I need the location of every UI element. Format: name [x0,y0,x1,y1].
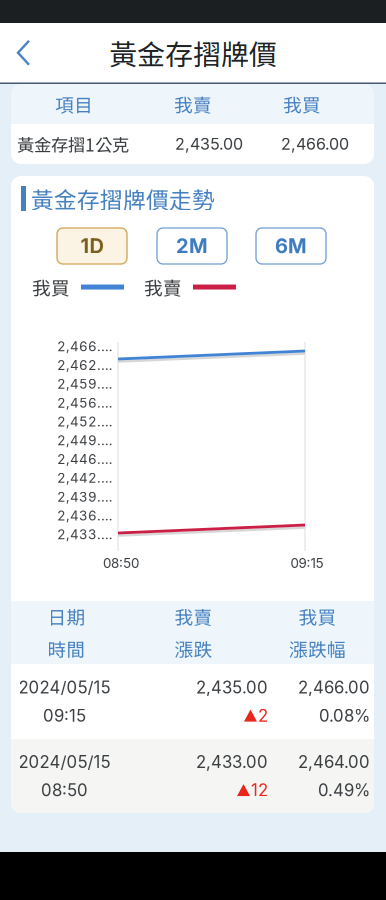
staticText: 2,466.00 [298,677,370,697]
staticText: 2,446.20 [57,451,115,467]
staticText: 2,433.00 [196,752,268,772]
staticText: 2,449.50 [57,432,115,448]
staticText: 2,466.00 [281,134,349,154]
staticText: 2024/05/15 [18,677,110,697]
staticText: 黃金存摺牌價 [109,32,277,73]
staticText: 我買 [283,90,321,117]
staticText: 09:15 [43,705,86,726]
staticText: 1D [80,234,103,258]
staticText: 我買 [32,273,70,300]
staticText: 2,439.60 [57,489,115,505]
staticText: 我買 [298,603,336,630]
staticText: 2 [258,705,268,726]
staticText: 6M [275,234,307,258]
staticText: 時間 [47,635,85,662]
staticText: 2,435.00 [196,677,268,697]
staticText: 黃金存摺1公克 [17,131,129,157]
staticText: 2M [176,234,208,258]
staticText: 2,464.00 [298,752,370,772]
button[interactable]: 6M [256,228,326,264]
staticText: 2,433.00 [57,526,115,542]
staticText: 08:50 [41,780,88,800]
staticText: 我賣 [174,90,212,117]
staticText: 0.08% [319,705,370,726]
staticText: 2024/05/15 [18,752,110,772]
staticText: 2,452.80 [57,413,115,430]
staticText: 2,462.70 [57,357,115,373]
staticText: 日期 [47,603,85,630]
staticText: 08:50 [103,555,139,571]
staticText: 漲跌 [174,635,212,662]
staticText: 漲跌幅 [289,635,346,662]
staticText: 0.49% [318,780,370,800]
staticText: 我賣 [174,603,212,630]
staticText: 2,459.40 [57,376,115,392]
staticText: 2,466.00 [57,338,115,354]
staticText: 我賣 [144,273,182,300]
button[interactable]: Back [0,25,48,81]
staticText: 項目 [55,90,93,117]
button[interactable]: 2M [157,228,227,264]
staticText: 09:15 [290,555,323,571]
staticText: 2,456.10 [57,395,115,411]
staticText: 黃金存摺牌價走勢 [31,182,215,215]
staticText: 2,436.30 [57,507,115,524]
staticText: 2,435.00 [175,134,243,154]
staticText: 2,442.90 [57,470,115,486]
button[interactable]: 1D [57,228,127,264]
staticText: 12 [251,780,268,800]
